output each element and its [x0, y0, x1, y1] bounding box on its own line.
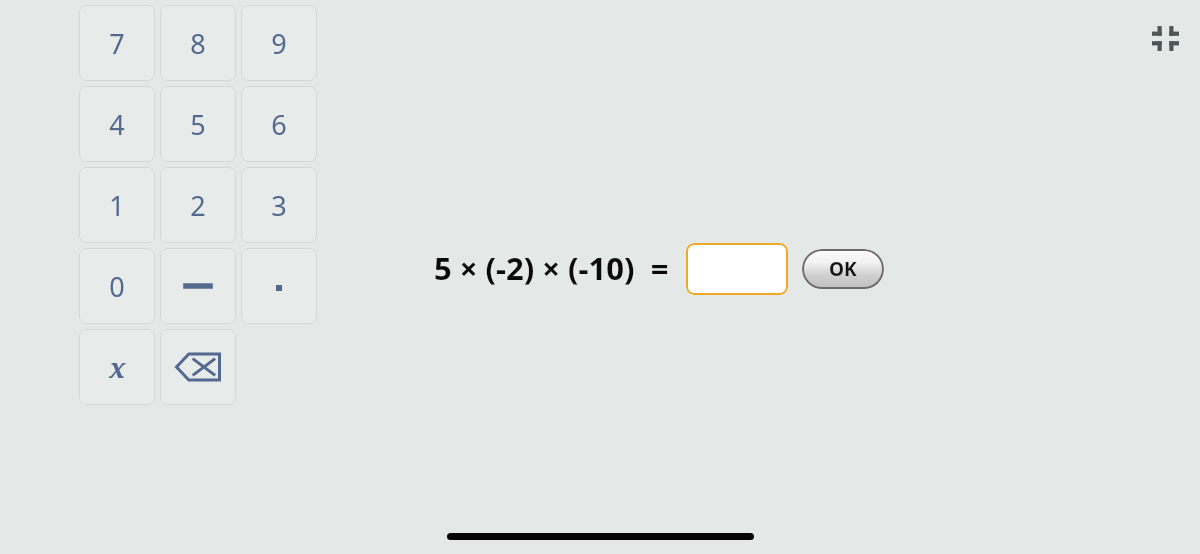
button[interactable]: OK [802, 249, 884, 289]
button[interactable]: 7 [79, 5, 155, 81]
button[interactable]: 1 [79, 167, 155, 243]
staticText: 7 [109, 25, 125, 62]
button[interactable]: 6 [241, 86, 317, 162]
button[interactable]: 3 [241, 167, 317, 243]
staticText: x [109, 349, 126, 386]
button[interactable]: 2 [160, 167, 236, 243]
staticText: 4 [109, 106, 125, 143]
button[interactable]: 9 [241, 5, 317, 81]
staticText: 3 [271, 187, 287, 224]
button[interactable]: Collapse [1142, 15, 1188, 61]
staticText: 8 [190, 25, 206, 62]
button[interactable]: 8 [160, 5, 236, 81]
staticText: 5 [190, 106, 206, 143]
button[interactable]: Decimal point [241, 248, 317, 324]
button[interactable]: 5 [160, 86, 236, 162]
staticText: 9 [271, 25, 287, 62]
staticText: OK [829, 256, 857, 282]
staticText: 6 [271, 106, 287, 143]
button[interactable]: 0 [79, 248, 155, 324]
button[interactable]: Variable x [79, 329, 155, 405]
staticText: 1 [109, 187, 125, 224]
staticText: 2 [190, 187, 206, 224]
staticText: 0 [109, 268, 125, 305]
button[interactable]: Minus [160, 248, 236, 324]
button[interactable]: 4 [79, 86, 155, 162]
button[interactable]: Backspace [160, 329, 236, 405]
button[interactable]: Answer input [686, 243, 788, 295]
staticText: 5 × (-2) × (-10) = [434, 247, 669, 289]
